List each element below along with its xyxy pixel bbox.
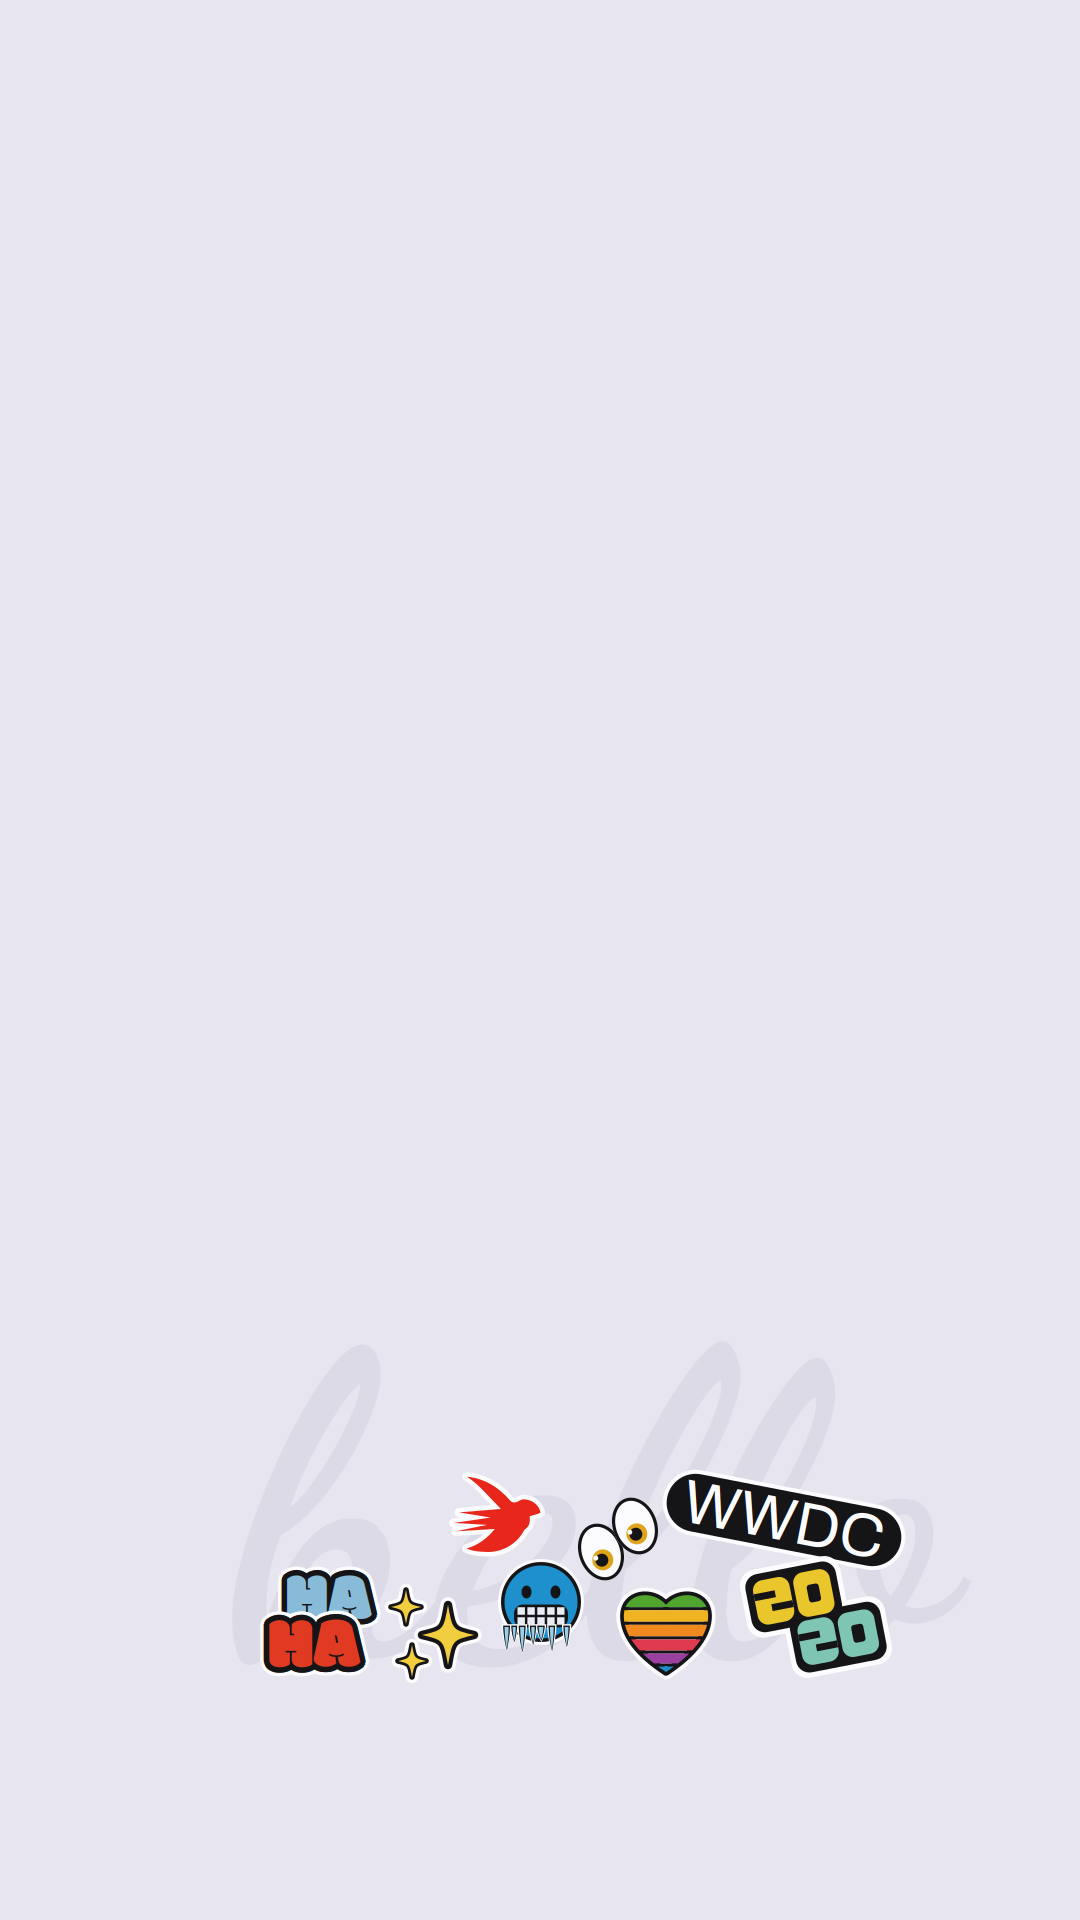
staticText: HA: [291, 1550, 377, 1650]
staticText: HA: [291, 1552, 377, 1652]
staticText: HA: [263, 1597, 355, 1705]
staticText: HA: [273, 1595, 365, 1703]
staticText: HA: [273, 1593, 365, 1701]
staticText: HA: [262, 1601, 354, 1710]
staticText: HA: [277, 1552, 363, 1652]
staticText: HA: [268, 1595, 360, 1703]
staticText: HA: [286, 1557, 372, 1658]
staticText: HA: [264, 1599, 356, 1707]
staticText: WWDC: [682, 1487, 886, 1553]
staticText: hello: [230, 1256, 954, 1768]
staticText: HA: [266, 1600, 358, 1708]
staticText: HA: [284, 1557, 370, 1657]
staticText: HA: [289, 1560, 375, 1660]
staticText: HA: [291, 1554, 377, 1654]
staticText: HA: [259, 1595, 351, 1703]
staticText: HA: [286, 1561, 372, 1661]
staticText: HA: [268, 1589, 360, 1698]
staticText: HA: [288, 1557, 374, 1657]
staticText: HA: [283, 1560, 369, 1660]
staticText: HA: [276, 1591, 368, 1700]
staticText: HA: [295, 1552, 381, 1652]
staticText: HA: [283, 1543, 369, 1644]
staticText: HA: [274, 1601, 366, 1710]
staticText: HA: [282, 1548, 368, 1648]
staticText: HA: [264, 1591, 356, 1699]
staticText: HA: [272, 1599, 364, 1707]
staticText: HA: [290, 1548, 376, 1648]
staticText: HA: [281, 1554, 367, 1654]
staticText: HA: [282, 1556, 368, 1656]
staticText: HA: [270, 1600, 362, 1708]
staticText: HA: [278, 1548, 364, 1649]
button[interactable]: WWDC: [659, 1485, 909, 1555]
staticText: HA: [281, 1550, 367, 1650]
staticText: HA: [290, 1556, 376, 1656]
staticText: HA: [270, 1590, 362, 1698]
staticText: HA: [260, 1591, 352, 1700]
staticText: HA: [268, 1604, 360, 1712]
staticText: HA: [289, 1543, 375, 1644]
staticText: HA: [276, 1598, 368, 1707]
staticText: HA: [265, 1586, 357, 1695]
staticText: HA: [262, 1588, 354, 1697]
staticText: HA: [263, 1593, 355, 1701]
staticText: HA: [268, 1600, 360, 1709]
staticText: HA: [288, 1547, 374, 1647]
staticText: HA: [268, 1586, 360, 1694]
staticText: HA: [292, 1558, 378, 1659]
staticText: HA: [273, 1597, 365, 1705]
staticText: HA: [294, 1555, 380, 1656]
staticText: HA: [286, 1552, 372, 1652]
staticText: HA: [271, 1603, 363, 1711]
staticText: HA: [262, 1595, 354, 1703]
staticText: HA: [274, 1588, 366, 1697]
staticText: HA: [277, 1595, 369, 1703]
staticText: HA: [286, 1543, 372, 1643]
staticText: HA: [260, 1598, 352, 1707]
staticText: HA: [294, 1548, 380, 1649]
staticText: HA: [280, 1545, 366, 1646]
staticText: HA: [271, 1586, 363, 1695]
staticText: HA: [284, 1547, 370, 1647]
staticText: HA: [278, 1555, 364, 1656]
staticText: HA: [286, 1546, 372, 1647]
staticText: HA: [266, 1590, 358, 1698]
staticText: HA: [280, 1558, 366, 1659]
staticText: HA: [272, 1591, 364, 1699]
staticText: HA: [292, 1545, 378, 1646]
staticText: HA: [265, 1603, 357, 1711]
staticText: HA: [280, 1552, 366, 1652]
